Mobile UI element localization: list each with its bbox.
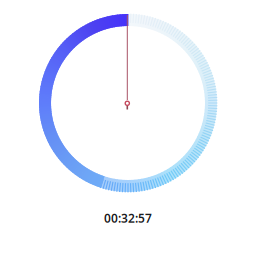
staticText: 00:32:57 bbox=[104, 210, 152, 226]
